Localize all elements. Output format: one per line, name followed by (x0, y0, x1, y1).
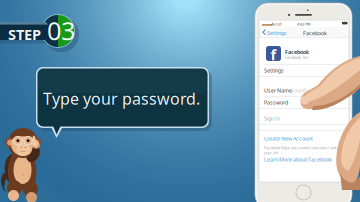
staticText: your life. (264, 150, 279, 155)
staticText: Password (264, 99, 288, 106)
staticText: 4:43 PM (297, 21, 311, 27)
staticText: STEP (8, 24, 41, 44)
staticText: Type your password. (43, 88, 200, 109)
staticText: Create New Account (264, 135, 313, 142)
staticText: Settings (264, 67, 284, 74)
staticText: Learn More about Facebook (264, 156, 332, 163)
staticText: Accel (271, 21, 281, 26)
staticText: Sign In (264, 115, 280, 122)
staticText: ••••• (262, 21, 272, 28)
staticText: Facebook, Inc. (285, 54, 309, 60)
staticText: 03 (47, 14, 75, 47)
staticText: User Name (264, 87, 292, 94)
staticText: your@email.com (291, 87, 332, 94)
staticText: Facebook helps you connect and share wit… (264, 145, 353, 150)
staticText: Facebook (285, 48, 309, 56)
staticText: Settings (267, 29, 287, 36)
staticText: Facebook (303, 30, 327, 37)
staticText: f (270, 45, 276, 64)
